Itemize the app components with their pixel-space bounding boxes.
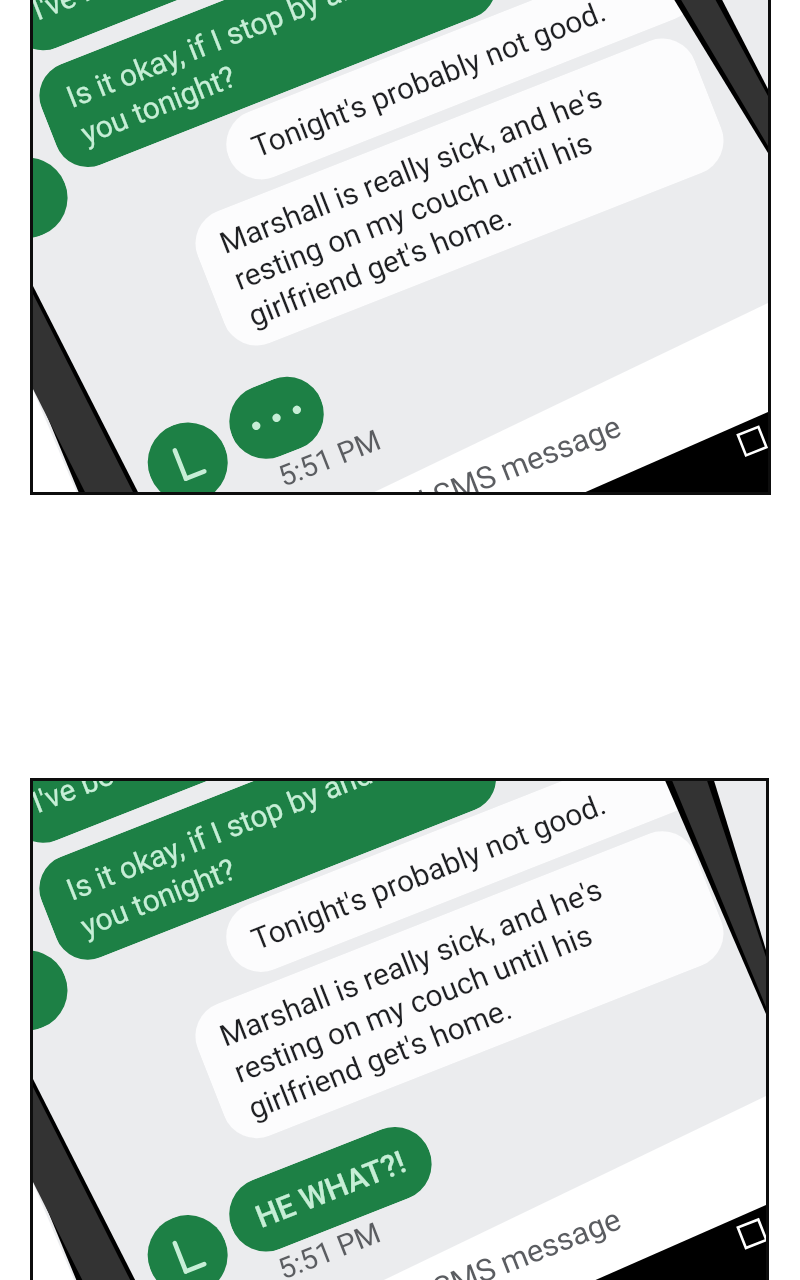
staticText: I've been so worried (33, 0, 286, 27)
staticText: 5:51 PM (273, 1215, 385, 1280)
button[interactable]: Recent apps (733, 422, 768, 461)
staticText: HE WHAT?! (250, 1143, 410, 1235)
button[interactable]: I've been so worried (33, 0, 768, 492)
staticText: Is it okay, if I stop by and see you ton… (62, 0, 443, 151)
staticText: Marshall is really sick, and he's restin… (215, 871, 636, 1126)
staticText: Tonight's probably not good. (247, 0, 611, 164)
staticText: I've been so worried (33, 781, 285, 820)
staticText: Is it okay, if I stop by and see you ton… (61, 781, 443, 944)
staticText: Tonight's probably not good. (247, 786, 611, 957)
button[interactable]: I've been so worried (33, 781, 766, 1280)
staticText: Send SMS message (356, 408, 626, 492)
staticText: Send SMS message (356, 1200, 626, 1280)
staticText: 5:51 PM (273, 423, 385, 492)
button[interactable]: Recent apps (733, 1214, 766, 1253)
staticText: Marshall is really sick, and he's restin… (215, 79, 636, 333)
